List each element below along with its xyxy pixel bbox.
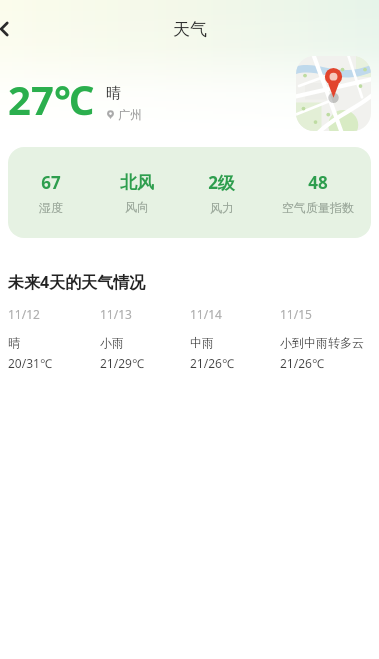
button[interactable]: 67 [8, 147, 371, 238]
button[interactable]: 48 [264, 171, 371, 215]
staticText: 小雨 [100, 335, 124, 350]
staticText: 晴 [8, 335, 20, 350]
staticText: 北风 [120, 172, 154, 193]
staticText: 风力 [210, 200, 234, 215]
staticText: 21/26℃ [190, 355, 234, 371]
button[interactable]: 北风 [94, 172, 179, 214]
staticText: 67 [41, 171, 61, 194]
staticText: 27℃ [8, 72, 94, 126]
button[interactable]: 2级 [179, 171, 264, 215]
staticText: 风向 [125, 199, 149, 214]
staticText: 天气 [173, 19, 207, 40]
staticText: 小到中雨转多云 [280, 335, 364, 350]
staticText: 11/12 [8, 306, 40, 322]
staticText: 48 [308, 171, 328, 194]
button[interactable]: 11/13 [100, 306, 190, 371]
staticText: 11/15 [280, 306, 312, 322]
button[interactable]: 11/12 [8, 306, 100, 371]
button[interactable]: 11/14 [190, 306, 280, 371]
staticText: 中雨 [190, 335, 214, 350]
staticText: 11/13 [100, 306, 132, 322]
staticText: 湿度 [39, 200, 63, 215]
staticText: 20/31℃ [8, 355, 52, 371]
staticText: 未来4天的天气情况 [8, 271, 146, 293]
staticText: 21/29℃ [100, 355, 144, 371]
staticText: 21/26℃ [280, 355, 324, 371]
button[interactable]: 67 [8, 171, 94, 215]
button[interactable]: Map [296, 56, 371, 131]
staticText: 11/14 [190, 306, 222, 322]
staticText: 空气质量指数 [282, 200, 354, 215]
button[interactable]: Back [0, 9, 26, 49]
staticText: 广州 [118, 107, 142, 122]
staticText: 晴 [106, 84, 121, 103]
button[interactable]: 11/15 [280, 306, 375, 371]
staticText: 2级 [208, 171, 235, 194]
